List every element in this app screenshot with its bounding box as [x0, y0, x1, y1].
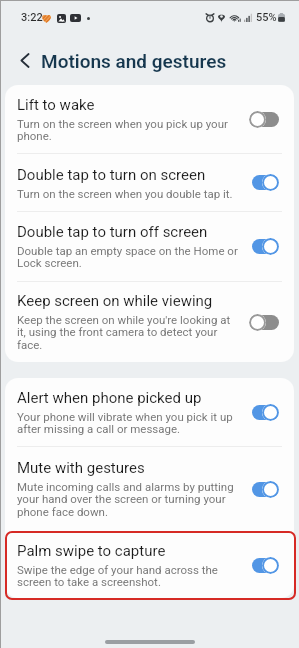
button[interactable]: Switch on [249, 174, 279, 191]
button[interactable]: Mute with gestures [5, 447, 294, 531]
staticText: Double tap to turn on screen [17, 166, 206, 184]
staticText: Mute with gestures [17, 459, 145, 477]
button[interactable]: Switch on [249, 481, 279, 498]
staticText: Keep the screen on while you're looking … [17, 313, 241, 352]
staticText: Mute incoming calls and alarms by puttin… [17, 480, 241, 519]
staticText: Lift to wake [17, 96, 95, 114]
button[interactable]: Alert when phone picked up [5, 378, 294, 446]
staticText: Palm swipe to capture [17, 542, 166, 560]
staticText: Double tap to turn off screen [17, 223, 208, 241]
staticText: 55% [256, 11, 277, 24]
button[interactable]: Switch on [249, 404, 279, 421]
staticText: Swipe the edge of your hand across the s… [17, 563, 241, 589]
staticText: Double tap an empty space on the Home or… [17, 244, 241, 270]
staticText: Your phone will vibrate when you pick it… [17, 410, 241, 436]
button[interactable]: Switch off [249, 314, 279, 331]
button[interactable]: Double tap to turn on screen [5, 154, 294, 211]
button[interactable]: Palm swipe to capture [5, 532, 294, 598]
button[interactable]: Switch on [249, 238, 279, 255]
button[interactable]: Switch off [249, 111, 279, 128]
button[interactable]: Back [13, 48, 37, 72]
staticText: Keep screen on while viewing [17, 292, 213, 310]
staticText: Alert when phone picked up [17, 389, 202, 407]
button[interactable]: Switch on [249, 557, 279, 574]
button[interactable]: Keep screen on while viewing [5, 282, 294, 362]
staticText: Motions and gestures [41, 50, 227, 72]
button[interactable]: Lift to wake [5, 85, 294, 153]
staticText: 3:22 [21, 11, 43, 24]
button[interactable]: Double tap to turn off screen [5, 212, 294, 281]
staticText: Turn on the screen when you pick up your… [17, 117, 241, 143]
staticText: Turn on the screen when you double tap i… [17, 187, 233, 200]
